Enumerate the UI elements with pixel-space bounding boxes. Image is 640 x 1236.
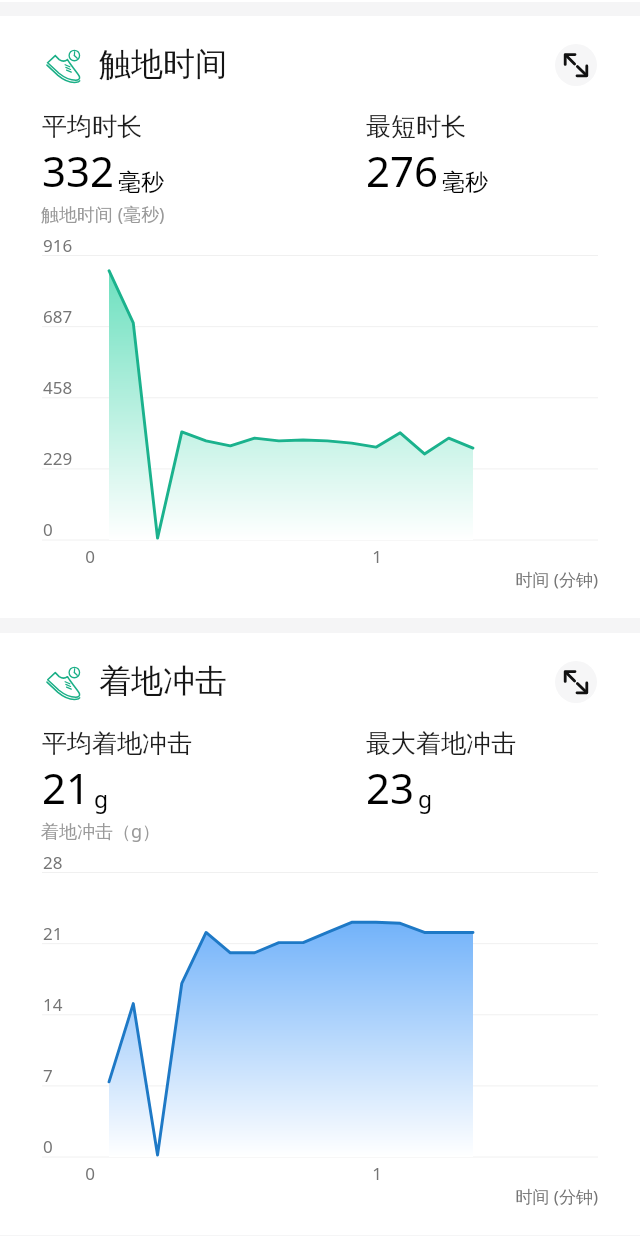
staticText: 1 (367, 1162, 387, 1185)
staticText: 触地时间 (毫秒) (41, 202, 165, 227)
staticText: g (94, 783, 109, 814)
button[interactable]: 全屏显示 (555, 661, 597, 703)
staticText: g (418, 783, 433, 814)
staticText: 687 (43, 305, 73, 328)
staticText: 23 (366, 759, 415, 816)
staticText: 28 (43, 851, 63, 874)
staticText: 毫秒 (118, 168, 164, 197)
staticText: 最短时长 (366, 111, 466, 142)
staticText: 毫秒 (442, 168, 488, 197)
staticText: 916 (43, 234, 73, 257)
staticText: 0 (43, 518, 53, 541)
staticText: 着地冲击 (99, 661, 227, 701)
staticText: 平均时长 (42, 111, 142, 142)
staticText: 21 (42, 759, 91, 816)
staticText: 332 (42, 142, 115, 199)
staticText: 7 (43, 1064, 53, 1087)
staticText: 最大着地冲击 (366, 728, 516, 759)
staticText: 0 (43, 1135, 53, 1158)
staticText: 458 (43, 376, 73, 399)
staticText: 着地冲击（g） (41, 819, 161, 844)
staticText: 触地时间 (99, 44, 227, 84)
staticText: 时间 (分钟) (0, 1185, 598, 1208)
staticText: 21 (43, 922, 63, 945)
button[interactable]: 全屏显示 (555, 44, 597, 86)
staticText: 229 (43, 447, 73, 470)
staticText: 时间 (分钟) (0, 568, 598, 591)
staticText: 0 (80, 545, 100, 568)
staticText: 1 (367, 545, 387, 568)
staticText: 平均着地冲击 (42, 728, 192, 759)
staticText: 276 (366, 142, 439, 199)
staticText: 14 (43, 993, 63, 1016)
staticText: 0 (80, 1162, 100, 1185)
